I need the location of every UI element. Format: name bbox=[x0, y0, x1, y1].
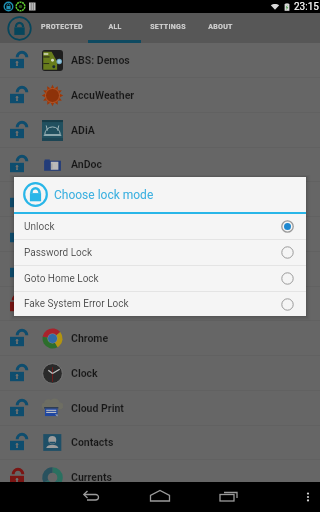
staticText: Contacts bbox=[71, 436, 114, 448]
button[interactable]: Chrome bbox=[0, 321, 320, 355]
button[interactable]: App logo bbox=[7, 16, 32, 41]
staticText: Fake System Error Lock bbox=[24, 298, 129, 310]
staticText: Goto Home Lock bbox=[24, 273, 99, 285]
button[interactable]: Browser bbox=[0, 217, 320, 251]
button[interactable]: Fake System Error Lock bbox=[14, 292, 306, 316]
button[interactable]: Currents bbox=[0, 460, 320, 494]
staticText: AccuWeather bbox=[71, 89, 135, 101]
staticText: Clock bbox=[71, 367, 98, 379]
button[interactable]: ABOUT bbox=[194, 13, 247, 43]
button[interactable]: ADiA bbox=[0, 113, 320, 147]
button[interactable]: Cloud Print bbox=[0, 391, 320, 425]
staticText: Unlock bbox=[24, 221, 55, 233]
button[interactable]: More options bbox=[298, 487, 318, 507]
staticText: Cloud Print bbox=[71, 402, 124, 414]
button[interactable]: ABS: Demos bbox=[0, 43, 320, 77]
button[interactable]: Unlock bbox=[14, 214, 306, 239]
button[interactable]: SETTINGS bbox=[141, 13, 194, 43]
staticText: Choose lock mode bbox=[54, 188, 154, 202]
staticText: AnDoc bbox=[71, 158, 102, 170]
button[interactable]: Downloads bbox=[0, 495, 320, 512]
staticText: Password Lock bbox=[24, 247, 93, 259]
staticText: ABS: Demos bbox=[71, 54, 130, 66]
button[interactable]: Password Lock bbox=[14, 240, 306, 265]
staticText: ABOUT bbox=[208, 23, 233, 31]
staticText: Currents bbox=[71, 471, 112, 483]
button[interactable]: Home bbox=[146, 484, 174, 512]
button[interactable]: Goto Home Lock bbox=[14, 266, 306, 291]
staticText: Calendar bbox=[71, 297, 114, 309]
staticText: 23:15 bbox=[294, 1, 319, 13]
button[interactable]: ALL bbox=[88, 13, 141, 43]
staticText: Calculator bbox=[71, 263, 120, 275]
staticText: ALL bbox=[108, 23, 122, 31]
staticText: Browser bbox=[71, 228, 110, 240]
button[interactable]: Recent apps bbox=[215, 483, 243, 511]
staticText: Chrome bbox=[71, 332, 109, 344]
button[interactable]: Clock bbox=[0, 356, 320, 390]
button[interactable]: Contacts bbox=[0, 425, 320, 459]
button[interactable]: Back bbox=[78, 484, 106, 512]
staticText: SETTINGS bbox=[150, 23, 186, 31]
button[interactable]: AccuWeather bbox=[0, 78, 320, 112]
button[interactable]: PROTECTED bbox=[35, 13, 88, 43]
button[interactable]: AnDoc bbox=[0, 147, 320, 181]
button[interactable]: Backup bbox=[0, 182, 320, 216]
staticText: ADiA bbox=[71, 124, 95, 136]
staticText: Backup bbox=[71, 193, 107, 205]
staticText: PROTECTED bbox=[41, 23, 83, 31]
button[interactable]: Calculator bbox=[0, 252, 320, 286]
button[interactable]: Calendar bbox=[0, 286, 320, 320]
